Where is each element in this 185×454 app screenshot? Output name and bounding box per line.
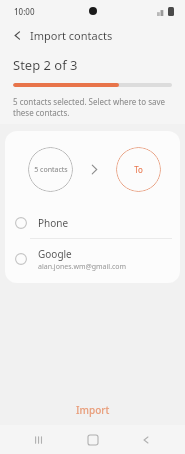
staticText: 10:00 (14, 6, 35, 17)
button[interactable]: Phone (5, 208, 180, 238)
staticText: 5 contacts (34, 165, 68, 175)
button[interactable]: Back (6, 24, 28, 46)
staticText: Google (38, 247, 72, 261)
button[interactable]: Google (5, 239, 180, 279)
button[interactable]: To (116, 147, 161, 192)
button[interactable]: Recent apps (24, 425, 54, 454)
staticText: To (134, 164, 143, 175)
button[interactable]: 5 contacts (28, 147, 73, 192)
staticText: alan.jones.wm@gmail.com (38, 262, 127, 272)
button[interactable]: Back (131, 425, 161, 454)
staticText: Import (76, 403, 110, 417)
staticText: Import contacts (30, 28, 113, 43)
staticText: Phone (38, 216, 69, 230)
staticText: Step 2 of 3 (13, 56, 78, 74)
button[interactable]: Import (0, 395, 185, 425)
button[interactable]: Home (78, 425, 108, 454)
staticText: 5 contacts selected. Select where to sav… (13, 96, 172, 118)
